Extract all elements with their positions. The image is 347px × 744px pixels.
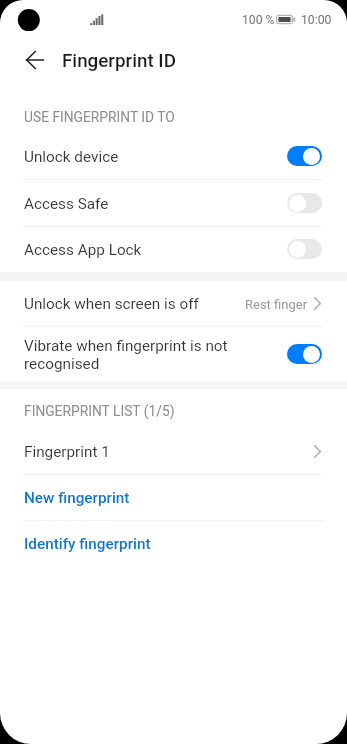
staticText: Access App Lock [24, 241, 142, 259]
staticText: USE FINGERPRINT ID TO [24, 109, 175, 125]
button[interactable]: Access Safe [0, 180, 347, 226]
staticText: Unlock device [24, 148, 119, 166]
staticText: 10:00 [301, 13, 332, 27]
button[interactable]: Back [17, 42, 53, 78]
button[interactable]: New fingerprint [0, 475, 347, 520]
button[interactable]: Vibrate when fingerprint is not recognis… [0, 327, 347, 381]
staticText: Identify fingerprint [24, 535, 151, 553]
staticText: Vibrate when fingerprint is not recognis… [24, 337, 228, 373]
staticText: Fingerprint 1 [24, 443, 110, 461]
button[interactable]: Switch off [287, 239, 322, 259]
button[interactable]: Switch on [287, 146, 322, 166]
staticText: Rest finger [245, 297, 308, 312]
staticText: Unlock when screen is off [24, 295, 199, 313]
staticText: 100 % [242, 13, 275, 27]
staticText: Access Safe [24, 195, 109, 213]
staticText: Fingerprint ID [62, 50, 176, 72]
button[interactable]: Unlock device [0, 133, 347, 179]
staticText: New fingerprint [24, 489, 130, 507]
button[interactable]: Switch off [287, 193, 322, 213]
button[interactable]: Unlock when screen is off [0, 281, 347, 326]
button[interactable]: Switch on [287, 344, 322, 364]
button[interactable]: Access App Lock [0, 227, 347, 272]
button[interactable]: Fingerprint 1 [0, 428, 347, 474]
button[interactable]: Identify fingerprint [0, 521, 347, 567]
staticText: FINGERPRINT LIST (1/5) [24, 403, 175, 419]
